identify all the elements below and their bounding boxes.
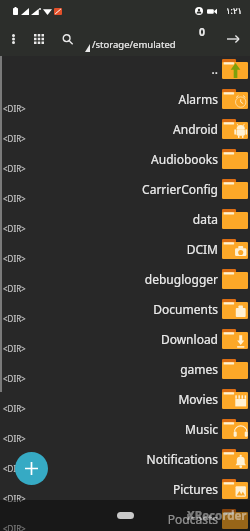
button[interactable]: <DIR> <box>0 446 250 476</box>
staticText: <DIR> <box>3 493 26 504</box>
staticText: <DIR> <box>3 523 26 531</box>
button[interactable]: .. <box>0 56 250 86</box>
staticText: Movies <box>178 391 218 407</box>
staticText: <DIR> <box>3 283 26 294</box>
staticText: <DIR> <box>3 133 26 144</box>
staticText: Pictures <box>172 481 218 497</box>
button[interactable]: <DIR> <box>0 326 250 356</box>
button[interactable]: <DIR> <box>0 356 250 386</box>
staticText: <DIR> <box>3 433 26 444</box>
button[interactable]: Go forward <box>222 28 244 50</box>
button[interactable]: <DIR> <box>0 176 250 206</box>
button[interactable]: Apps grid <box>28 28 50 50</box>
staticText: debuglogger <box>144 271 218 287</box>
staticText: <DIR> <box>3 343 26 354</box>
staticText: data <box>192 211 218 227</box>
button[interactable]: <DIR> <box>0 476 250 506</box>
button[interactable]: Search <box>56 28 78 50</box>
staticText: Download <box>160 331 218 347</box>
staticText: /storage/emulated <box>92 38 176 51</box>
staticText: <DIR> <box>3 313 26 324</box>
staticText: <DIR> <box>3 403 26 414</box>
staticText: <DIR> <box>3 373 26 384</box>
staticText: <DIR> <box>3 253 26 264</box>
staticText: Documents <box>153 301 218 317</box>
staticText: <DIR> <box>3 193 26 204</box>
staticText: games <box>180 361 218 377</box>
staticText: 0 <box>199 25 206 39</box>
staticText: Audiobooks <box>151 151 218 167</box>
staticText: <DIR> <box>3 163 26 174</box>
button[interactable]: <DIR> <box>0 416 250 446</box>
button[interactable]: More options <box>4 28 22 50</box>
staticText: CarrierConfig <box>142 181 218 197</box>
staticText: <DIR> <box>3 103 26 114</box>
staticText: Music <box>185 421 218 437</box>
staticText: <DIR> <box>3 463 26 474</box>
button[interactable]: <DIR> <box>0 386 250 416</box>
staticText: ١:٢١ <box>226 5 243 17</box>
staticText: DCIM <box>186 241 218 257</box>
button[interactable]: <DIR> <box>0 146 250 176</box>
button[interactable]: <DIR> <box>0 116 250 146</box>
button[interactable]: <DIR> <box>0 266 250 296</box>
staticText: Notifications <box>146 451 218 467</box>
button[interactable]: <DIR> <box>0 236 250 266</box>
button[interactable]: <DIR> <box>0 506 250 531</box>
staticText: .. <box>211 61 218 77</box>
staticText: XRecorder <box>187 508 247 524</box>
staticText: Podcasts <box>167 511 218 527</box>
button[interactable]: <DIR> <box>0 206 250 236</box>
staticText: Alarms <box>178 91 218 107</box>
button[interactable]: <DIR> <box>0 86 250 116</box>
staticText: Android <box>173 121 218 137</box>
button[interactable]: <DIR> <box>0 296 250 326</box>
staticText: <DIR> <box>3 223 26 234</box>
button[interactable]: Add <box>15 452 48 485</box>
